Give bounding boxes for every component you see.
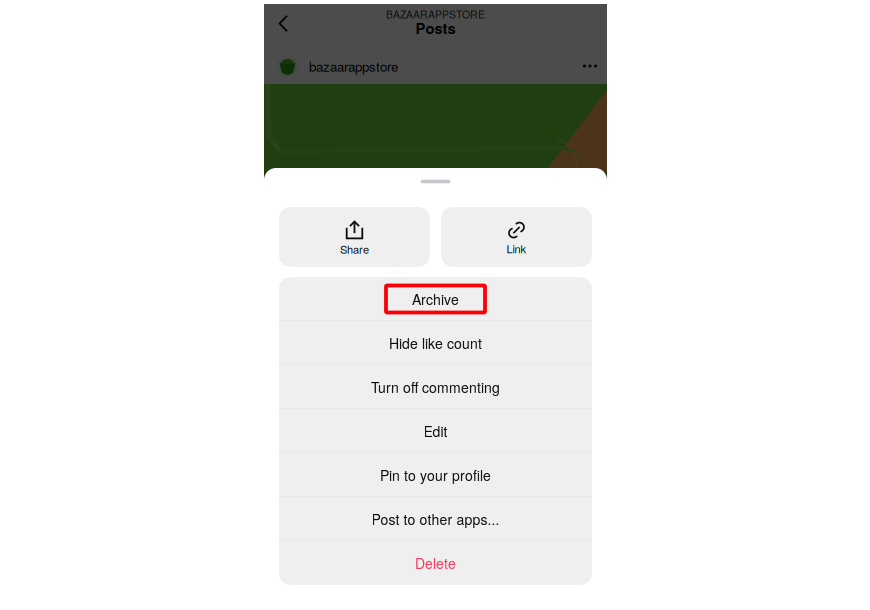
staticText: Turn off commenting (371, 377, 500, 397)
staticText: Delete (415, 553, 456, 573)
button[interactable]: Delete (279, 541, 592, 585)
staticText: bazaarappstore (309, 56, 398, 76)
staticText: Archive (412, 289, 459, 309)
staticText: Link (506, 241, 526, 256)
staticText: Posts (415, 17, 455, 38)
button[interactable]: Archive (279, 277, 592, 321)
button[interactable]: Back (264, 4, 306, 48)
staticText: Hide like count (389, 333, 482, 353)
button[interactable]: More options (583, 51, 597, 81)
staticText: Pin to your profile (380, 465, 491, 485)
button[interactable]: Share (279, 207, 430, 267)
staticText: Post to other apps... (371, 509, 499, 529)
button[interactable]: Post to other apps... (279, 497, 592, 541)
button[interactable]: Hide like count (279, 321, 592, 365)
staticText: Edit (423, 421, 447, 441)
staticText: BAZAARAPPSTORE (386, 7, 485, 21)
button[interactable]: Link (441, 207, 592, 267)
button[interactable]: Edit (279, 409, 592, 453)
button[interactable]: Turn off commenting (279, 365, 592, 409)
staticText: Share (340, 241, 369, 257)
button[interactable]: Pin to your profile (279, 453, 592, 497)
